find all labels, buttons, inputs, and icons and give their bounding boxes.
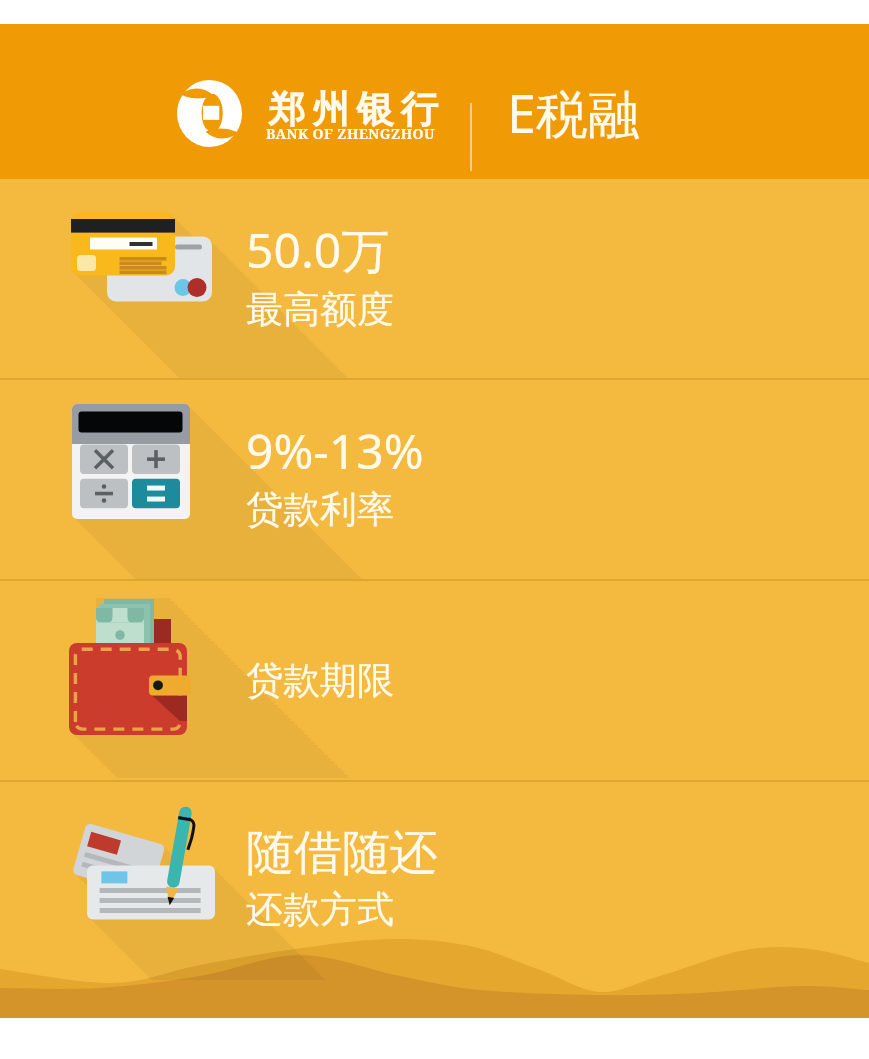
button[interactable]: Loan interest rate <box>0 380 869 579</box>
button[interactable]: Repayment method <box>0 782 869 982</box>
staticText: 还款方式 <box>246 886 394 933</box>
other: Repayment method <box>0 782 869 982</box>
button[interactable]: Loan term <box>0 581 869 780</box>
staticText: 贷款利率 <box>246 486 394 533</box>
other: Loan interest rate <box>0 380 869 579</box>
staticText: 郑州银行 <box>265 86 441 133</box>
staticText: 50.0万 <box>246 217 390 283</box>
staticText: 9%-13% <box>246 418 424 483</box>
other: Loan term <box>0 581 869 780</box>
button[interactable]: Maximum credit limit <box>0 179 869 378</box>
staticText: E税融 <box>507 77 640 148</box>
other: Bank of Zhengzhou logo <box>177 80 242 147</box>
staticText: 随借随还 <box>246 823 438 883</box>
other: Maximum credit limit <box>0 179 869 378</box>
staticText: 最高额度 <box>246 286 394 333</box>
staticText: 贷款期限 <box>246 657 394 704</box>
staticText: BANK OF ZHENGZHOU <box>266 124 435 143</box>
